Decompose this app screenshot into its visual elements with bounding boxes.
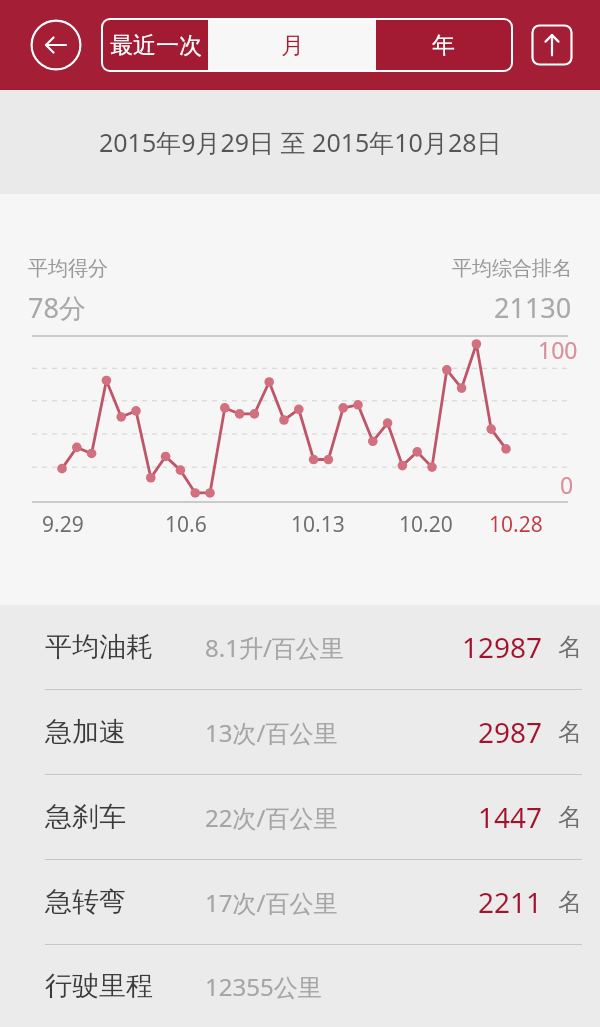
staticText: 10.6 [165,510,207,539]
staticText: 名 [558,802,600,832]
staticText: 22次/百公里 [205,801,422,834]
staticText: 8.1升/百公里 [205,631,422,664]
staticText: 最近一次 [110,31,202,60]
staticText: 2015年9月29日 至 2015年10月28日 [99,125,502,159]
button[interactable]: 年 [376,20,511,70]
staticText: 年 [432,31,455,60]
staticText: 1447 [422,798,542,836]
button[interactable]: 急转弯 [0,860,600,944]
staticText: 12355公里 [205,970,422,1003]
staticText: 平均综合排名 [452,256,572,281]
staticText: 急刹车 [45,800,205,834]
button[interactable]: 月 [208,20,376,70]
staticText: 9.29 [42,510,84,539]
staticText: 月 [281,31,304,60]
staticText: 10.20 [399,510,453,539]
staticText: 急转弯 [45,885,205,919]
staticText: 平均得分 [28,256,108,281]
staticText: 100 [538,334,578,365]
staticText: 行驶里程 [45,969,205,1003]
staticText: 17次/百公里 [205,886,422,919]
staticText: 13次/百公里 [205,716,422,749]
staticText: 10.13 [291,510,345,539]
staticText: 2987 [422,713,542,751]
staticText: 名 [558,887,600,917]
button[interactable]: Share [528,21,576,69]
staticText: 急加速 [45,715,205,749]
button[interactable]: 急刹车 [0,775,600,859]
staticText: 78分 [28,289,86,326]
button[interactable]: Back [30,19,82,71]
button[interactable]: 平均油耗 [0,605,600,689]
staticText: 21130 [494,289,572,326]
staticText: 0 [560,469,574,500]
staticText: 名 [558,717,600,747]
staticText: 12987 [422,628,542,666]
button[interactable]: 最近一次 [103,20,208,70]
staticText: 名 [558,632,600,662]
staticText: 平均油耗 [45,630,205,664]
staticText: 10.28 [489,510,543,539]
button[interactable]: 行驶里程 [0,945,600,1027]
button[interactable]: 急加速 [0,690,600,774]
staticText: 2211 [422,883,542,921]
